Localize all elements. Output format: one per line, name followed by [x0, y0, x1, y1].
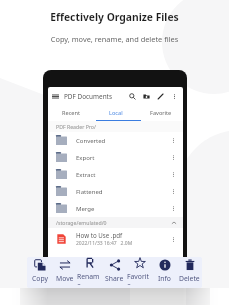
staticText: Move	[56, 274, 74, 283]
button[interactable]: Merge	[48, 200, 183, 217]
button[interactable]: Converted	[48, 132, 183, 149]
other: More	[170, 236, 177, 243]
staticText: Extract	[76, 171, 96, 179]
button[interactable]: Local	[93, 105, 138, 121]
button[interactable]: Menu	[52, 93, 59, 100]
button[interactable]: Recent	[48, 105, 93, 121]
staticText: How to Use .pdf	[76, 231, 123, 239]
button[interactable]: Delete	[177, 257, 202, 288]
button[interactable]: Extract	[48, 166, 183, 183]
other: More	[170, 205, 177, 212]
staticText: Info	[158, 274, 171, 283]
button[interactable]: More options	[171, 93, 178, 100]
staticText: Rename	[77, 272, 102, 285]
button[interactable]: Move	[52, 257, 77, 288]
staticText: Copy, move, rename, and delete files	[0, 34, 229, 44]
button[interactable]: Edit	[157, 93, 164, 100]
staticText: Effectively Organize Files	[0, 10, 229, 24]
staticText: Recent	[62, 109, 80, 117]
staticText: PDF Documents	[64, 92, 112, 101]
button[interactable]: Rename	[77, 257, 102, 288]
staticText: PDF Reader Pro/	[56, 123, 96, 130]
button[interactable]: Copy	[27, 257, 52, 288]
button[interactable]: Favorite	[138, 105, 183, 121]
staticText: Merge	[76, 205, 95, 213]
other: More	[170, 137, 177, 144]
button[interactable]: Search	[129, 93, 136, 100]
other: More	[170, 154, 177, 161]
staticText: Converted	[76, 137, 106, 145]
button[interactable]: How to Use .pdf	[48, 228, 183, 250]
staticText: /storage/emulated/0	[56, 219, 107, 226]
staticText: Delete	[179, 274, 200, 283]
button[interactable]: Export	[48, 149, 183, 166]
button[interactable]: Flattened	[48, 183, 183, 200]
staticText: Local	[109, 109, 123, 117]
staticText: Share	[105, 274, 124, 283]
button[interactable]: Info	[152, 257, 177, 288]
staticText: Flattened	[76, 188, 103, 196]
staticText: 2022/11/33 16:47 2.0M	[76, 240, 133, 247]
other: More	[170, 188, 177, 195]
button[interactable]: New folder	[143, 93, 150, 100]
staticText: Favorite	[127, 272, 152, 285]
staticText: Export	[76, 154, 95, 162]
other: More	[170, 171, 177, 178]
staticText: Copy	[32, 274, 48, 283]
button[interactable]: Favorite	[127, 257, 152, 288]
staticText: Favorite	[150, 109, 172, 117]
button[interactable]: Share	[102, 257, 127, 288]
